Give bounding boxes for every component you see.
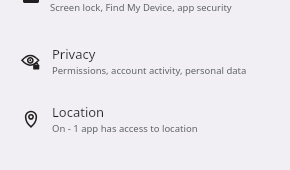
staticText: Permissions, account activity, personal … [52,64,247,77]
button[interactable]: Privacy [0,42,290,80]
button[interactable]: Location [0,100,290,138]
staticText: Privacy [52,45,96,63]
other: Security [23,0,39,4]
other: Privacy [21,51,41,71]
staticText: On - 1 app has access to location [52,122,198,135]
button[interactable]: Security [0,0,290,22]
staticText: Screen lock, Find My Device, app securit… [50,1,232,14]
staticText: Location [52,103,105,121]
other: Location [21,109,41,129]
